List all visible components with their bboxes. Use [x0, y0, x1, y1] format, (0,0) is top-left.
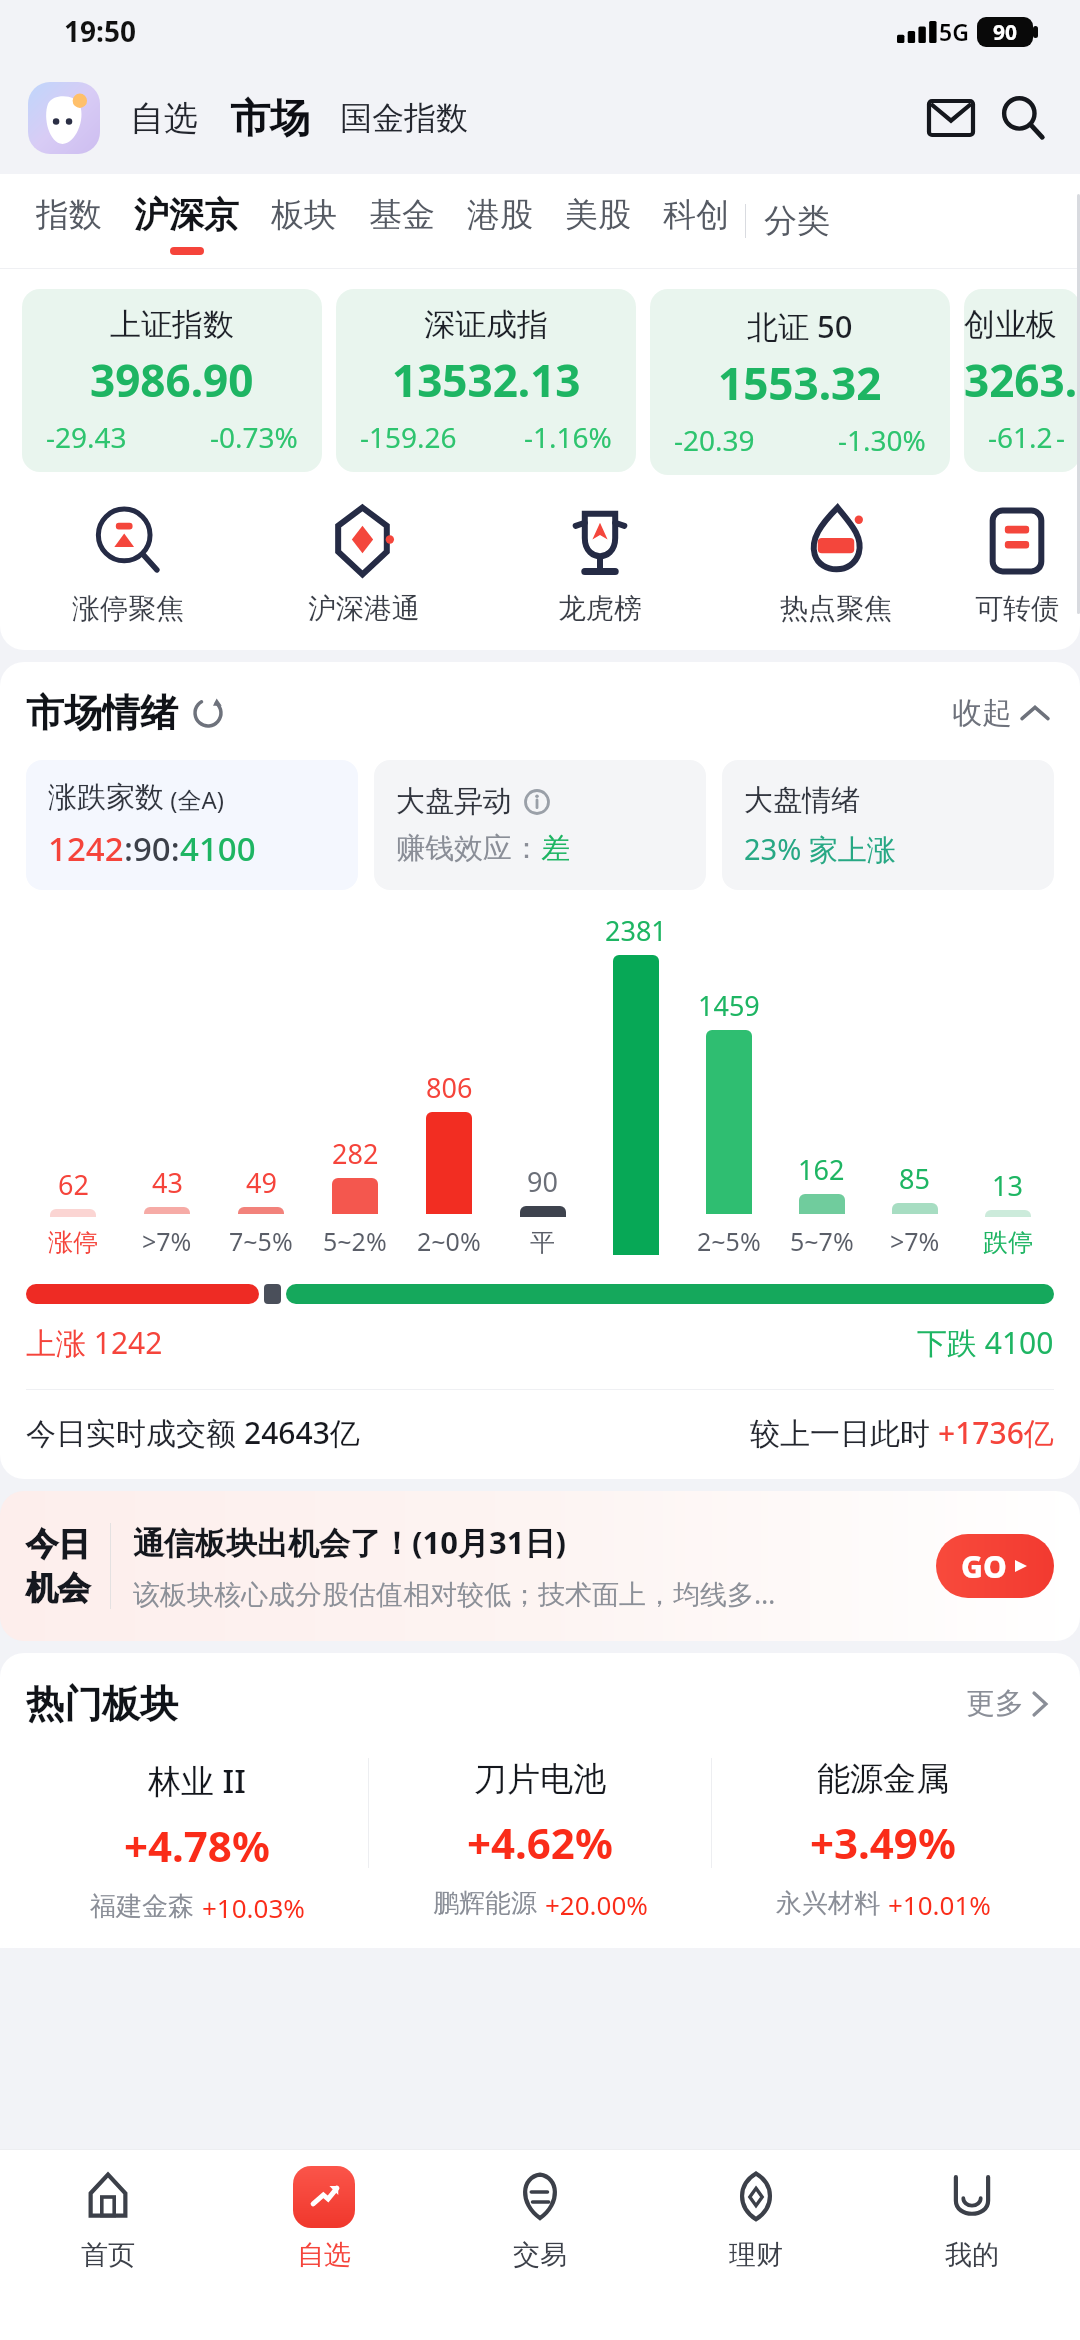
staticText: 162 [798, 1151, 845, 1188]
staticText: 自选 [130, 97, 198, 140]
button[interactable]: 沪深京 [118, 174, 255, 268]
button[interactable]: 上证指数 [22, 289, 322, 472]
staticText: -1.30% [838, 421, 926, 459]
staticText: 创业板指 [964, 305, 1080, 344]
button[interactable]: 美股 [549, 174, 647, 268]
button[interactable]: 热点聚焦 [718, 499, 954, 630]
button[interactable]: 深证成指 [336, 289, 636, 472]
staticText: -20.39 [674, 421, 755, 459]
staticText: 差 [541, 830, 570, 867]
staticText: 跌停 [983, 1227, 1033, 1258]
staticText: 大盘异动 [396, 783, 512, 820]
button[interactable]: 首页 [0, 2150, 216, 2310]
staticText: 3986.90 [90, 350, 254, 410]
staticText: 806 [426, 1069, 473, 1106]
staticText: -0.73% [210, 418, 298, 456]
staticText: 板块 [271, 194, 337, 236]
staticText: >7% [890, 1224, 940, 1258]
button[interactable]: 北证 50 [650, 289, 950, 475]
button[interactable]: Profile [28, 82, 100, 154]
button[interactable]: 涨停聚焦 [10, 499, 246, 630]
button[interactable]: 基金 [353, 174, 451, 268]
staticText: 鹏辉能源 [433, 1887, 537, 1920]
button[interactable]: 市场 [226, 87, 314, 149]
staticText: +10.03% [202, 1890, 305, 1925]
staticText: 5~7% [790, 1224, 854, 1258]
button[interactable]: 龙虎榜 [482, 499, 718, 630]
staticText: 通信板块出机会了！(10月31日) [133, 1521, 566, 1563]
button[interactable]: 科创 [647, 174, 745, 268]
staticText: 今日 [26, 1524, 90, 1564]
staticText: 13532.13 [392, 350, 581, 410]
button[interactable]: 收起 [946, 688, 1054, 738]
staticText: >7% [142, 1224, 192, 1258]
staticText: 24643亿 [244, 1412, 360, 1453]
staticText: 5~2% [323, 1224, 387, 1258]
staticText: 首页 [81, 2238, 135, 2272]
button[interactable]: GO [936, 1534, 1054, 1598]
staticText: 赚钱效应： [396, 830, 541, 867]
staticText: 1553.32 [718, 353, 882, 413]
button[interactable]: Search [994, 89, 1052, 147]
button[interactable]: 理财 [648, 2150, 864, 2310]
button[interactable]: 更多 [960, 1679, 1054, 1728]
staticText: 指数 [36, 194, 102, 236]
staticText: 49 [246, 1164, 277, 1201]
staticText: -29.43 [46, 418, 127, 456]
button[interactable]: 可转债 [954, 499, 1080, 630]
button[interactable]: 我的 [864, 2150, 1080, 2310]
staticText: 较上一日此时 [750, 1412, 938, 1453]
staticText: 沪深港通 [308, 591, 420, 626]
staticText: +4.62% [467, 1814, 613, 1871]
staticText: 龙虎榜 [558, 591, 642, 626]
staticText: 北证 50 [747, 305, 853, 347]
staticText: 市场 [230, 93, 310, 143]
staticText: 国金指数 [340, 98, 468, 138]
staticText: 深证成指 [424, 305, 548, 344]
staticText: 3263.1 [964, 350, 1080, 410]
staticText: +4.78% [124, 1817, 270, 1874]
button[interactable]: 自选 [126, 91, 202, 146]
staticText: 热门板块 [26, 1680, 178, 1728]
button[interactable]: Messages [922, 89, 980, 147]
staticText: 2~5% [697, 1224, 761, 1258]
staticText: 涨停聚焦 [72, 591, 184, 626]
staticText: 涨停 [48, 1227, 98, 1258]
button[interactable]: 能源金属 [712, 1758, 1054, 1948]
button[interactable]: 板块 [255, 174, 353, 268]
button[interactable]: 今日 [0, 1491, 1080, 1641]
staticText: 福建金森 [90, 1890, 194, 1923]
button[interactable]: 林业 II [26, 1758, 368, 1948]
staticText: 今日实时成交额 [26, 1412, 244, 1453]
button[interactable]: 自选 [216, 2150, 432, 2310]
staticText: :90: [124, 826, 180, 871]
staticText: 林业 II [148, 1758, 246, 1803]
staticText: 下跌 4100 [917, 1322, 1054, 1363]
staticText: 科创 [663, 194, 729, 236]
button[interactable]: 分类 [746, 174, 848, 268]
staticText: +3.49% [810, 1814, 956, 1871]
button[interactable]: 港股 [451, 174, 549, 268]
staticText: 2~0% [417, 1224, 481, 1258]
staticText: 43 [152, 1164, 183, 1201]
button[interactable]: 创业板指 [964, 289, 1080, 472]
button[interactable]: 涨跌家数 [26, 760, 358, 890]
staticText: 市场情绪 [26, 689, 178, 737]
button[interactable]: Refresh [190, 695, 226, 731]
button[interactable]: 国金指数 [336, 92, 472, 144]
staticText: 热点聚焦 [780, 591, 892, 626]
button[interactable]: 沪深港通 [246, 499, 482, 630]
button[interactable]: 大盘异动 [374, 760, 706, 890]
staticText: 机会 [26, 1568, 90, 1608]
button[interactable]: 刀片电池 [369, 1758, 711, 1948]
staticText: GO [961, 1546, 1007, 1587]
staticText: 4100 [180, 826, 256, 871]
button[interactable]: 指数 [20, 174, 118, 268]
staticText: 13 [992, 1167, 1023, 1204]
staticText: 90 [527, 1163, 558, 1200]
button[interactable]: 大盘情绪 [722, 760, 1054, 890]
staticText: 上涨 1242 [26, 1322, 163, 1363]
button[interactable]: 交易 [432, 2150, 648, 2310]
staticText: 90 [993, 18, 1018, 47]
staticText: 上证指数 [110, 305, 234, 344]
